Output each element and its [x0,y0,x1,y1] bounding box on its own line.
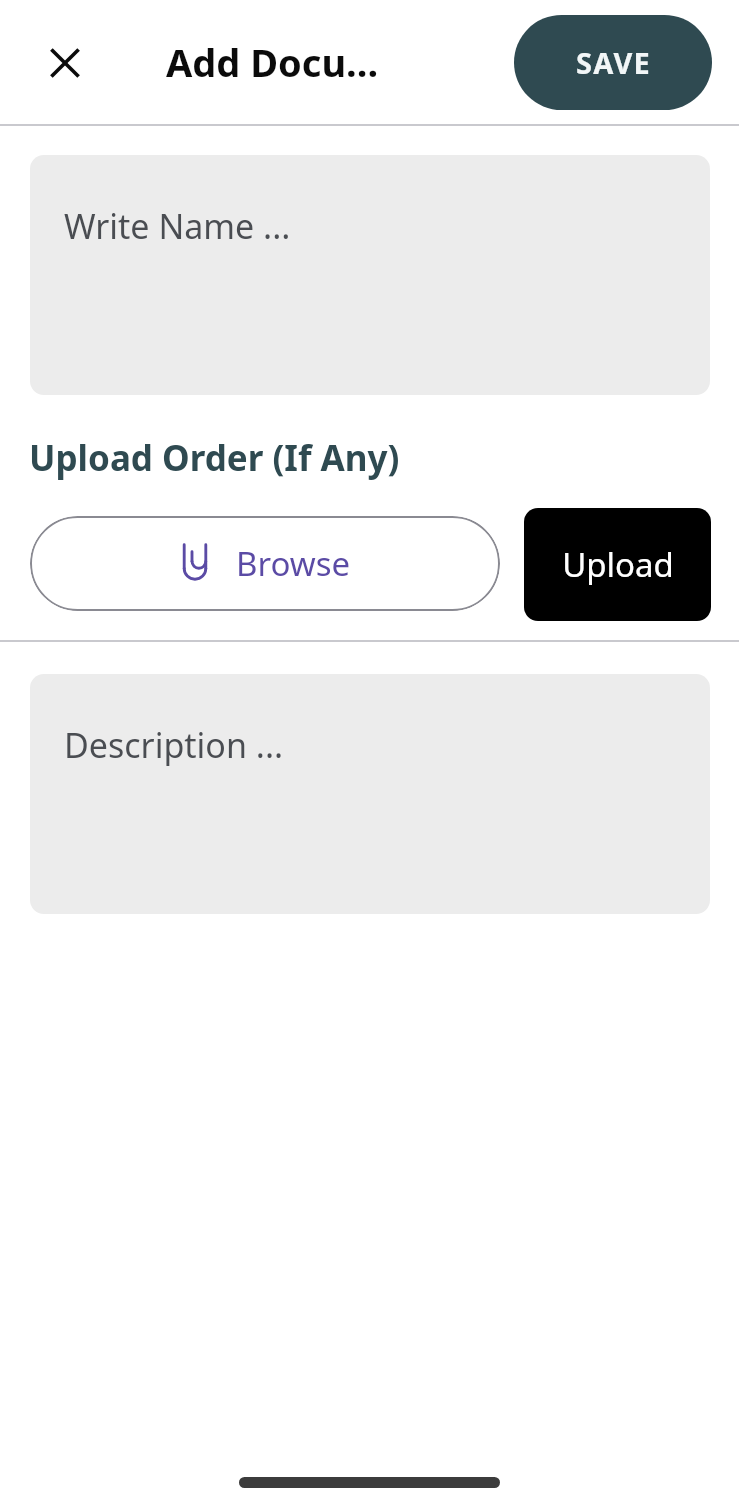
button[interactable]: SAVE [514,15,712,110]
staticText: SAVE [576,43,651,82]
button[interactable]: Browse [30,516,500,611]
staticText: Upload Order (If Any) [29,434,400,482]
staticText: Description ... [64,722,284,768]
button[interactable]: Close [33,31,97,95]
button[interactable]: Description ... [30,674,710,914]
staticText: Browse [236,541,351,586]
staticText: Add Docu... [166,36,379,88]
staticText: Upload [562,542,674,587]
staticText: Write Name ... [64,203,291,249]
button[interactable]: Upload [524,508,711,621]
button[interactable]: Write Name ... [30,155,710,395]
